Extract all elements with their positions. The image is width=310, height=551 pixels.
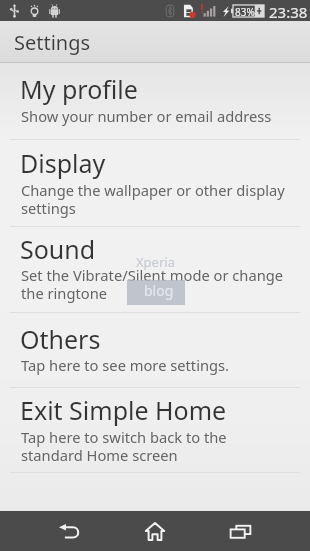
staticText: Set the Vibrate/Silent mode or change th…: [21, 265, 301, 303]
staticText: 83%: [235, 5, 255, 19]
staticText: Change the wallpaper or other display se…: [21, 180, 301, 218]
button[interactable]: Home: [112, 511, 198, 551]
staticText: Others: [20, 322, 101, 356]
staticText: Xperia: [136, 253, 175, 271]
staticText: Tap here to see more settings.: [21, 355, 301, 375]
staticText: blog: [144, 281, 174, 300]
staticText: 23:38: [269, 2, 308, 22]
staticText: Exit Simple Home: [20, 393, 227, 427]
staticText: Sound: [20, 232, 96, 266]
staticText: My profile: [20, 72, 138, 106]
staticText: Tap here to switch back to the standard …: [21, 427, 301, 465]
button[interactable]: Back: [27, 511, 112, 551]
staticText: Settings: [14, 29, 91, 56]
staticText: Show your number or email address: [21, 106, 301, 126]
staticText: Display: [20, 146, 106, 180]
button[interactable]: Recent apps: [198, 511, 283, 551]
